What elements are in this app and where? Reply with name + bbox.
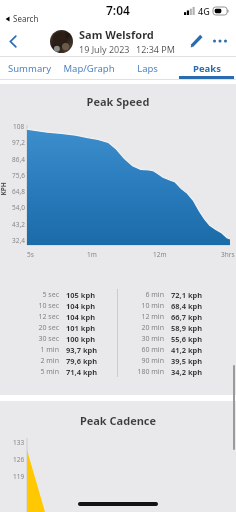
staticText: 58,9 kph <box>171 323 216 333</box>
staticText: 32,4 <box>12 236 25 245</box>
button[interactable]: Map/Graph <box>59 57 118 79</box>
staticText: 105 kph <box>66 290 111 300</box>
staticText: 79,6 kph <box>66 356 111 366</box>
staticText: 93,7 kph <box>66 345 111 355</box>
staticText: 104 kph <box>66 301 111 311</box>
staticText: 66,7 kph <box>171 312 216 322</box>
staticText: 19 July 2023 <box>79 43 130 55</box>
staticText: Laps <box>137 62 158 75</box>
staticText: 55,6 kph <box>171 334 216 344</box>
staticText: 34,2 kph <box>171 367 216 377</box>
staticText: Sam Welsford <box>79 27 154 42</box>
staticText: 20 min <box>124 323 164 333</box>
staticText: 1 min <box>20 345 59 355</box>
button[interactable]: More options <box>208 29 232 53</box>
staticText: 30 min <box>124 334 164 344</box>
button[interactable]: Back <box>0 28 26 54</box>
staticText: 41,2 kph <box>171 345 216 355</box>
staticText: 6 min <box>124 290 164 300</box>
staticText: 39,5 kph <box>171 356 216 366</box>
staticText: Search <box>13 13 39 24</box>
staticText: 71,4 kph <box>66 367 111 377</box>
staticText: Map/Graph <box>63 62 115 75</box>
staticText: KPH <box>0 181 7 195</box>
staticText: 100 kph <box>66 334 111 344</box>
staticText: 5 min <box>20 367 59 377</box>
staticText: 20 sec <box>20 323 59 333</box>
staticText: 7:04 <box>106 2 130 18</box>
staticText: 126 <box>13 455 25 464</box>
staticText: Summary <box>8 62 51 75</box>
staticText: 12 sec <box>20 312 59 322</box>
staticText: 104 kph <box>66 312 111 322</box>
staticText: 97,2 <box>12 138 25 147</box>
staticText: 5s <box>27 250 34 259</box>
staticText: 3hrs <box>221 250 235 259</box>
staticText: Peaks <box>193 62 221 75</box>
staticText: 10 sec <box>20 301 59 311</box>
staticText: 4G <box>198 5 210 17</box>
button[interactable]: Laps <box>118 57 177 79</box>
button[interactable]: Peaks <box>177 57 236 79</box>
staticText: 30 sec <box>20 334 59 344</box>
staticText: 2 min <box>20 356 59 366</box>
staticText: 12:34 PM <box>136 43 175 55</box>
staticText: 133 <box>13 438 25 447</box>
staticText: 119 <box>13 472 25 481</box>
staticText: 10 min <box>124 301 164 311</box>
staticText: 90 min <box>124 356 164 366</box>
staticText: 72,1 kph <box>171 290 216 300</box>
staticText: 68,4 kph <box>171 301 216 311</box>
staticText: 12 min <box>124 312 164 322</box>
staticText: 1m <box>87 250 97 259</box>
staticText: 75,6 <box>12 171 25 180</box>
staticText: 64,8 <box>12 187 25 196</box>
button[interactable]: Summary <box>0 57 59 79</box>
staticText: 108 <box>13 122 25 131</box>
staticText: 54,0 <box>12 203 25 212</box>
staticText: Peak Cadence <box>0 413 236 428</box>
staticText: 12m <box>153 250 167 259</box>
staticText: 180 min <box>124 367 164 377</box>
staticText: 5 sec <box>20 290 59 300</box>
staticText: 43,2 <box>12 220 25 229</box>
staticText: 86,4 <box>12 155 25 164</box>
staticText: 60 min <box>124 345 164 355</box>
button[interactable]: Edit <box>184 29 208 53</box>
staticText: Peak Speed <box>0 94 236 109</box>
staticText: 101 kph <box>66 323 111 333</box>
